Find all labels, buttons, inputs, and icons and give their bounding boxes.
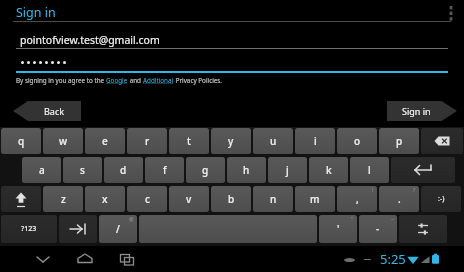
staticText: g [202, 163, 209, 177]
button[interactable]: , [337, 186, 377, 212]
button[interactable]: e [85, 128, 125, 154]
button[interactable]: Recent apps [114, 246, 140, 272]
staticText: @ [129, 216, 134, 223]
button[interactable]: - [359, 215, 397, 243]
staticText: e [102, 134, 108, 148]
staticText: Sign in [16, 4, 56, 21]
button[interactable]: Back [13, 101, 81, 121]
staticText: p [396, 134, 403, 148]
staticText: . [398, 192, 401, 206]
staticText: 5:25 [380, 250, 406, 268]
button[interactable]: t [169, 128, 209, 154]
button[interactable]: d [104, 157, 143, 183]
button[interactable]: Enter [391, 157, 455, 183]
staticText: ' [337, 222, 340, 236]
staticText: i [314, 134, 317, 148]
button[interactable]: i [295, 128, 335, 154]
staticText: ?123 [21, 224, 37, 234]
staticText: m [310, 192, 320, 206]
button[interactable]: Shift [1, 186, 41, 212]
staticText: pointofview.test@gmail.com [20, 33, 160, 47]
staticText: k [326, 163, 332, 177]
staticText: ? [413, 187, 416, 194]
button[interactable]: Tab [59, 215, 97, 243]
button[interactable]: f [145, 157, 184, 183]
staticText: l [368, 163, 371, 177]
button[interactable]: ' [319, 215, 357, 243]
button[interactable]: Space [139, 215, 317, 243]
button[interactable]: q [1, 128, 41, 154]
button[interactable]: Backspace [421, 128, 463, 154]
button[interactable]: s [63, 157, 102, 183]
button[interactable]: j [268, 157, 307, 183]
staticText: o [354, 134, 361, 148]
staticText: t [187, 134, 191, 148]
staticText: / [116, 222, 120, 236]
button[interactable]: g [186, 157, 225, 183]
button[interactable]: . [379, 186, 419, 212]
staticText: Back [44, 105, 65, 117]
staticText: z [61, 192, 66, 206]
staticText: - [376, 222, 380, 236]
staticText: Google [106, 76, 128, 85]
staticText: s [80, 163, 85, 177]
button[interactable]: / [99, 215, 137, 243]
staticText: Sign in [402, 105, 431, 117]
button[interactable]: More options [442, 2, 460, 22]
staticText: n [270, 192, 277, 206]
button[interactable]: l [350, 157, 389, 183]
staticText: ! [372, 187, 374, 194]
staticText: j [286, 163, 289, 177]
staticText: , [356, 192, 359, 206]
button[interactable]: y [211, 128, 251, 154]
staticText: d [120, 163, 127, 177]
staticText: " [351, 216, 354, 223]
button[interactable]: z [43, 186, 83, 212]
button[interactable]: Home [72, 246, 98, 272]
staticText: :-) [438, 194, 445, 204]
button[interactable]: o [337, 128, 377, 154]
staticText: a [39, 163, 45, 177]
staticText: y [228, 134, 234, 148]
button[interactable]: r [127, 128, 167, 154]
button[interactable]: a [22, 157, 61, 183]
button[interactable]: u [253, 128, 293, 154]
staticText: u [270, 134, 277, 148]
staticText: v [186, 192, 192, 206]
button[interactable]: c [127, 186, 167, 212]
button[interactable]: Keyboard settings [399, 215, 447, 243]
staticText: r [145, 134, 150, 148]
staticText: x [102, 192, 108, 206]
button[interactable]: x [85, 186, 125, 212]
staticText: Additional [143, 76, 174, 85]
button[interactable]: n [253, 186, 293, 212]
button[interactable]: p [379, 128, 419, 154]
staticText: c [145, 192, 150, 206]
staticText: and [128, 76, 143, 85]
button[interactable]: Sign in [387, 101, 457, 121]
button[interactable]: m [295, 186, 335, 212]
button[interactable]: Symbols [1, 215, 57, 243]
staticText: w [59, 134, 68, 148]
button[interactable]: h [227, 157, 266, 183]
staticText: q [18, 134, 25, 148]
staticText: b [228, 192, 235, 206]
button[interactable]: b [211, 186, 251, 212]
staticText: Privacy Policies. [174, 76, 223, 85]
staticText: f [163, 163, 167, 177]
button[interactable]: Back [30, 246, 56, 272]
button[interactable]: w [43, 128, 83, 154]
staticText: ~ [391, 216, 394, 223]
staticText: h [243, 163, 250, 177]
button[interactable]: Emoji [421, 186, 461, 212]
button[interactable]: k [309, 157, 348, 183]
staticText: By signing in you agree to the [16, 76, 106, 85]
button[interactable]: v [169, 186, 209, 212]
